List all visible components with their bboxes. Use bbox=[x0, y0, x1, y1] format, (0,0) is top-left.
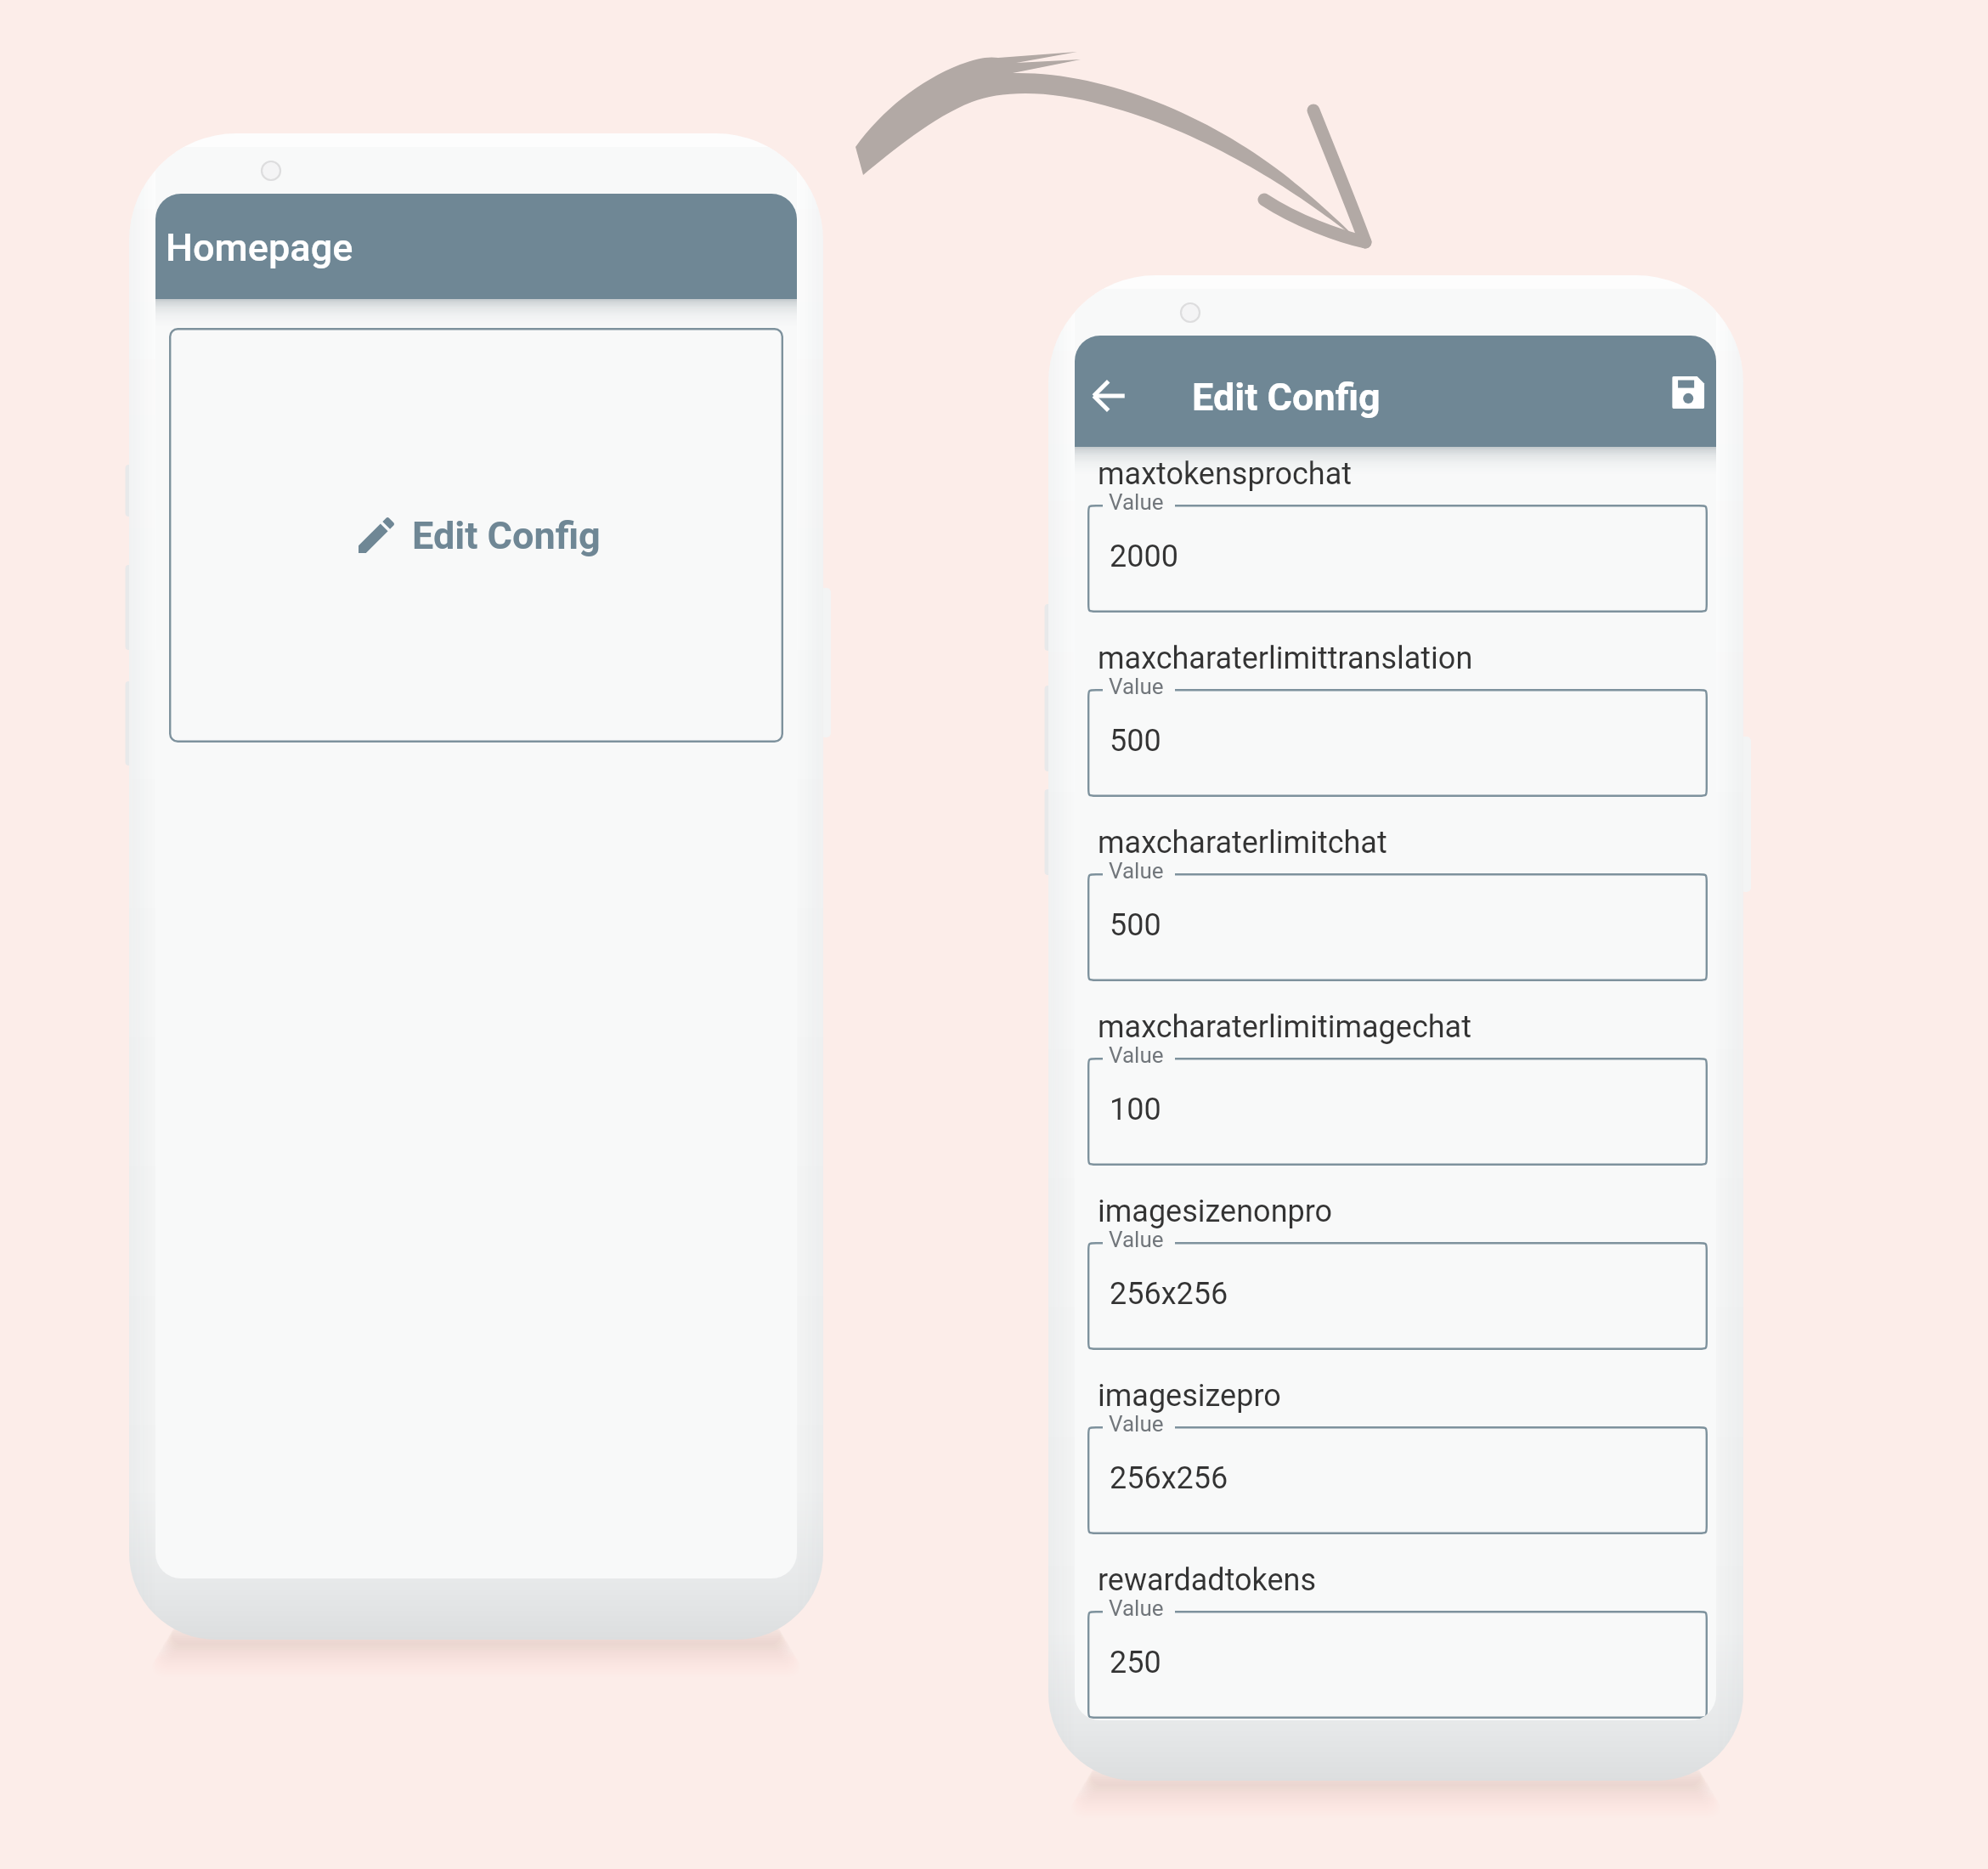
staticText: Edit Config bbox=[1192, 375, 1381, 420]
staticText: Homepage bbox=[166, 225, 353, 270]
staticText: 100 bbox=[1110, 1092, 1161, 1127]
staticText: 256x256 bbox=[1110, 1460, 1228, 1496]
staticText: Value bbox=[1109, 1411, 1164, 1437]
staticText: rewardadtokens bbox=[1098, 1562, 1317, 1598]
staticText: Edit Config bbox=[412, 513, 601, 558]
staticText: 256x256 bbox=[1110, 1276, 1228, 1312]
staticText: maxtokensprochat bbox=[1098, 456, 1353, 492]
button[interactable]: Save bbox=[1658, 363, 1716, 422]
staticText: 2000 bbox=[1110, 539, 1178, 574]
staticText: imagesizepro bbox=[1098, 1378, 1281, 1414]
staticText: Value bbox=[1109, 1227, 1164, 1252]
staticText: maxcharaterlimitchat bbox=[1098, 825, 1387, 861]
staticText: 500 bbox=[1110, 907, 1161, 943]
staticText: imagesizenonpro bbox=[1098, 1194, 1333, 1229]
staticText: Value bbox=[1109, 1595, 1164, 1621]
staticText: Value bbox=[1109, 674, 1164, 699]
staticText: Value bbox=[1109, 858, 1164, 884]
staticText: Value bbox=[1109, 1042, 1164, 1068]
button[interactable]: Back bbox=[1080, 366, 1139, 426]
staticText: 500 bbox=[1110, 723, 1161, 759]
staticText: 250 bbox=[1110, 1645, 1161, 1680]
staticText: Value bbox=[1109, 489, 1164, 515]
button[interactable]: Edit Config bbox=[169, 328, 783, 743]
staticText: maxcharaterlimittranslation bbox=[1098, 641, 1473, 676]
staticText: maxcharaterlimitimagechat bbox=[1098, 1009, 1471, 1045]
